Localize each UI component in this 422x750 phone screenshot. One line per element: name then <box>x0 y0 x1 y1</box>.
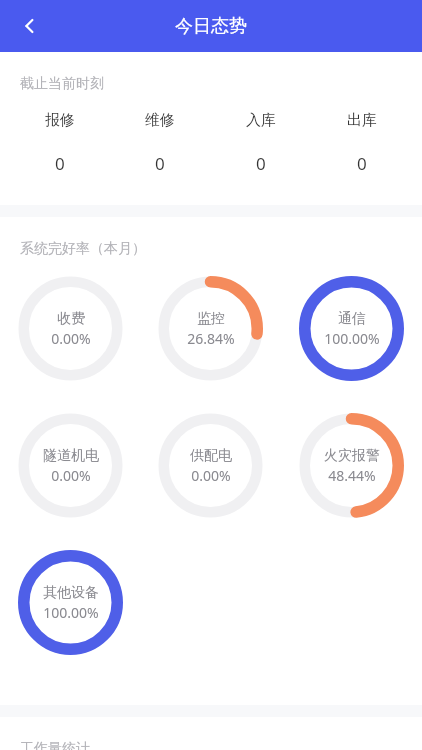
button[interactable]: 其他设备 <box>0 534 140 671</box>
button[interactable]: 监控 <box>140 260 281 397</box>
button[interactable]: 隧道机电 <box>0 397 140 534</box>
button[interactable]: 供配电 <box>140 397 281 534</box>
staticText: 收费 <box>57 310 85 328</box>
staticText: 监控 <box>197 310 225 328</box>
button[interactable]: 火灾报警 <box>281 397 422 534</box>
button[interactable]: 出库 <box>311 111 412 175</box>
staticText: 通信 <box>338 310 366 328</box>
staticText: 0.00% <box>191 466 231 485</box>
staticText: 26.84% <box>187 329 235 348</box>
staticText: 0.00% <box>51 329 91 348</box>
staticText: 入库 <box>246 111 276 130</box>
staticText: 0 <box>155 152 165 175</box>
staticText: 出库 <box>347 111 377 130</box>
staticText: 48.44% <box>328 466 376 485</box>
staticText: 今日态势 <box>175 15 247 38</box>
staticText: 维修 <box>145 111 175 130</box>
button[interactable]: 维修 <box>110 111 210 175</box>
staticText: 100.00% <box>324 329 380 348</box>
button[interactable]: 收费 <box>0 260 140 397</box>
staticText: 0 <box>357 152 367 175</box>
staticText: 截止当前时刻 <box>20 75 104 93</box>
button[interactable]: 通信 <box>281 260 422 397</box>
staticText: 100.00% <box>43 603 99 622</box>
staticText: 0 <box>55 152 65 175</box>
staticText: 系统完好率（本月） <box>20 240 146 258</box>
button[interactable]: Back <box>8 4 52 48</box>
button[interactable]: 报修 <box>10 111 110 175</box>
staticText: 其他设备 <box>43 584 99 602</box>
staticText: 火灾报警 <box>324 447 380 465</box>
button[interactable]: 入库 <box>210 111 311 175</box>
staticText: 供配电 <box>190 447 232 465</box>
staticText: 工作量统计 <box>20 740 90 750</box>
staticText: 0.00% <box>51 466 91 485</box>
staticText: 隧道机电 <box>43 447 99 465</box>
staticText: 0 <box>256 152 266 175</box>
staticText: 报修 <box>45 111 75 130</box>
